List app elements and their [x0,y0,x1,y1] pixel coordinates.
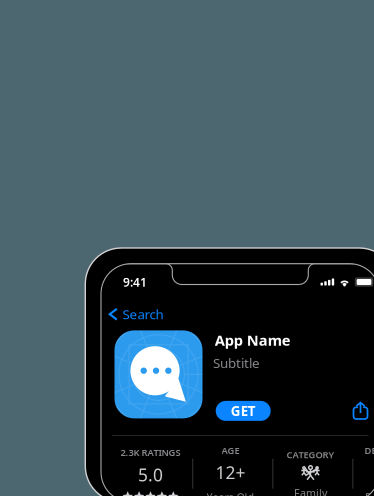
staticText: AGE [221,444,239,457]
staticText: 2.3K RATINGS [120,446,180,459]
staticText: 5.0 [138,463,163,486]
staticText: Search [122,305,163,323]
staticText: 9:41 [123,274,147,290]
staticText: Family [294,486,327,496]
staticText: App Name [215,330,291,350]
staticText: 12+ [215,461,245,484]
staticText: Developer [365,490,374,496]
button[interactable]: Search [102,300,172,328]
staticText: CATEGORY [286,448,334,461]
button[interactable]: GET [216,401,271,421]
staticText: GET [231,402,256,420]
staticText: Subtitle [213,354,260,372]
staticText: Years Old [206,490,254,496]
button[interactable]: Share [353,401,367,419]
staticText: DEVELOPER [364,444,374,457]
